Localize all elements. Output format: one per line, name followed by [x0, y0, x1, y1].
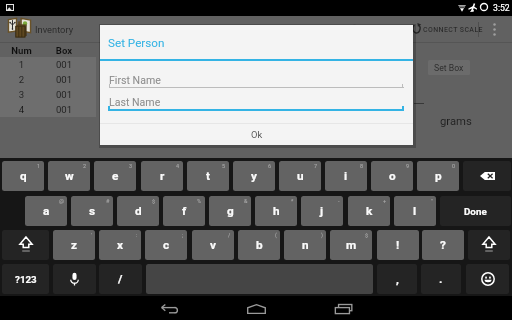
button[interactable]: / — [99, 264, 142, 294]
staticText: ' — [91, 232, 92, 238]
button[interactable]: + — [348, 196, 390, 226]
button[interactable]: ( — [238, 230, 280, 260]
staticText: $ — [152, 198, 156, 204]
button[interactable]: ? — [422, 230, 464, 260]
staticText: d — [135, 204, 142, 218]
button[interactable]: More options — [486, 18, 503, 40]
staticText: / — [118, 272, 123, 286]
staticText: grams — [440, 115, 472, 128]
button[interactable]: 8 — [325, 161, 367, 191]
button[interactable]: 4 — [141, 161, 183, 191]
button[interactable]: @ — [25, 196, 67, 226]
staticText: w — [65, 169, 74, 183]
staticText: v — [210, 238, 216, 252]
staticText: , — [396, 272, 399, 286]
button[interactable]: ' — [53, 230, 95, 260]
button[interactable]: 1 — [0, 57, 96, 72]
button[interactable]: . — [421, 264, 461, 294]
button[interactable]: Home — [242, 296, 270, 320]
staticText: 8 — [360, 163, 364, 169]
button[interactable]: * — [255, 196, 297, 226]
staticText: l — [413, 204, 417, 218]
button[interactable]: & — [209, 196, 251, 226]
staticText: ? — [440, 238, 446, 252]
staticText: Num — [0, 45, 43, 56]
staticText: 001 — [43, 74, 85, 85]
button[interactable]: Set Box — [428, 60, 470, 75]
button[interactable]: Voice input — [53, 264, 96, 294]
staticText: 5 — [222, 163, 226, 169]
staticText: 0 — [452, 163, 456, 169]
button[interactable]: CONNECT SCALE — [423, 20, 483, 39]
staticText: p — [435, 169, 442, 183]
staticText: o — [389, 169, 396, 183]
button[interactable]: 4 — [0, 102, 96, 117]
staticText: First Name — [109, 74, 161, 86]
staticText: q — [20, 169, 27, 183]
button[interactable]: : — [99, 230, 141, 260]
staticText: c — [163, 238, 170, 252]
button[interactable]: Backspace — [463, 161, 511, 191]
staticText: f — [182, 204, 187, 218]
staticText: h — [273, 204, 280, 218]
staticText: ! — [396, 238, 400, 252]
button[interactable]: 2 — [48, 161, 90, 191]
staticText: 001 — [43, 89, 85, 100]
button[interactable]: " — [394, 196, 436, 226]
staticText: u — [297, 169, 304, 183]
staticText: + — [383, 198, 387, 204]
staticText: ( — [275, 232, 277, 238]
button[interactable]: Emoji — [466, 264, 509, 294]
staticText: r — [160, 169, 165, 183]
staticText: j — [320, 204, 324, 218]
button[interactable]: / — [192, 230, 234, 260]
button[interactable]: $ — [117, 196, 159, 226]
button[interactable]: 9 — [371, 161, 413, 191]
button[interactable]: Shift — [2, 230, 49, 260]
button[interactable]: , — [377, 264, 417, 294]
button[interactable]: ?123 — [2, 264, 49, 294]
button[interactable]: 2 — [0, 72, 96, 87]
button[interactable]: ! — [377, 230, 419, 260]
button[interactable]: Recent apps — [329, 296, 357, 320]
staticText: & — [244, 198, 248, 204]
button[interactable]: 5 — [187, 161, 229, 191]
staticText: i — [344, 169, 348, 183]
staticText: - — [338, 198, 340, 204]
button[interactable]: - — [301, 196, 343, 226]
staticText: 001 — [43, 59, 85, 70]
button[interactable]: 3 — [94, 161, 136, 191]
button[interactable]: $ — [330, 230, 372, 260]
button[interactable]: # — [71, 196, 113, 226]
button[interactable]: 0 — [417, 161, 459, 191]
staticText: CONNECT SCALE — [423, 26, 483, 34]
staticText: g — [227, 204, 234, 218]
button[interactable]: Ok — [100, 124, 413, 145]
staticText: x — [117, 238, 124, 252]
staticText: s — [89, 204, 96, 218]
staticText: 6 — [268, 163, 272, 169]
staticText: y — [251, 169, 257, 183]
staticText: 3 — [129, 163, 133, 169]
button[interactable]: ; — [145, 230, 187, 260]
staticText: 4 — [0, 104, 43, 115]
button[interactable]: Shift — [468, 230, 510, 260]
staticText: Set Person — [108, 36, 165, 50]
staticText: ; — [182, 232, 184, 238]
button[interactable]: 6 — [233, 161, 275, 191]
button[interactable]: 3 — [0, 87, 96, 102]
staticText: Box — [43, 45, 85, 56]
staticText: Ok — [251, 129, 263, 140]
button[interactable]: % — [163, 196, 205, 226]
staticText: 2 — [83, 163, 87, 169]
button[interactable]: 1 — [2, 161, 44, 191]
staticText: m — [346, 238, 357, 252]
staticText: 1 — [37, 163, 41, 169]
button[interactable]: Back — [155, 296, 183, 320]
button[interactable]: Done — [440, 196, 511, 226]
button[interactable]: ) — [284, 230, 326, 260]
staticText: t — [206, 169, 210, 183]
button[interactable]: 7 — [279, 161, 321, 191]
staticText: Inventory — [35, 24, 74, 35]
